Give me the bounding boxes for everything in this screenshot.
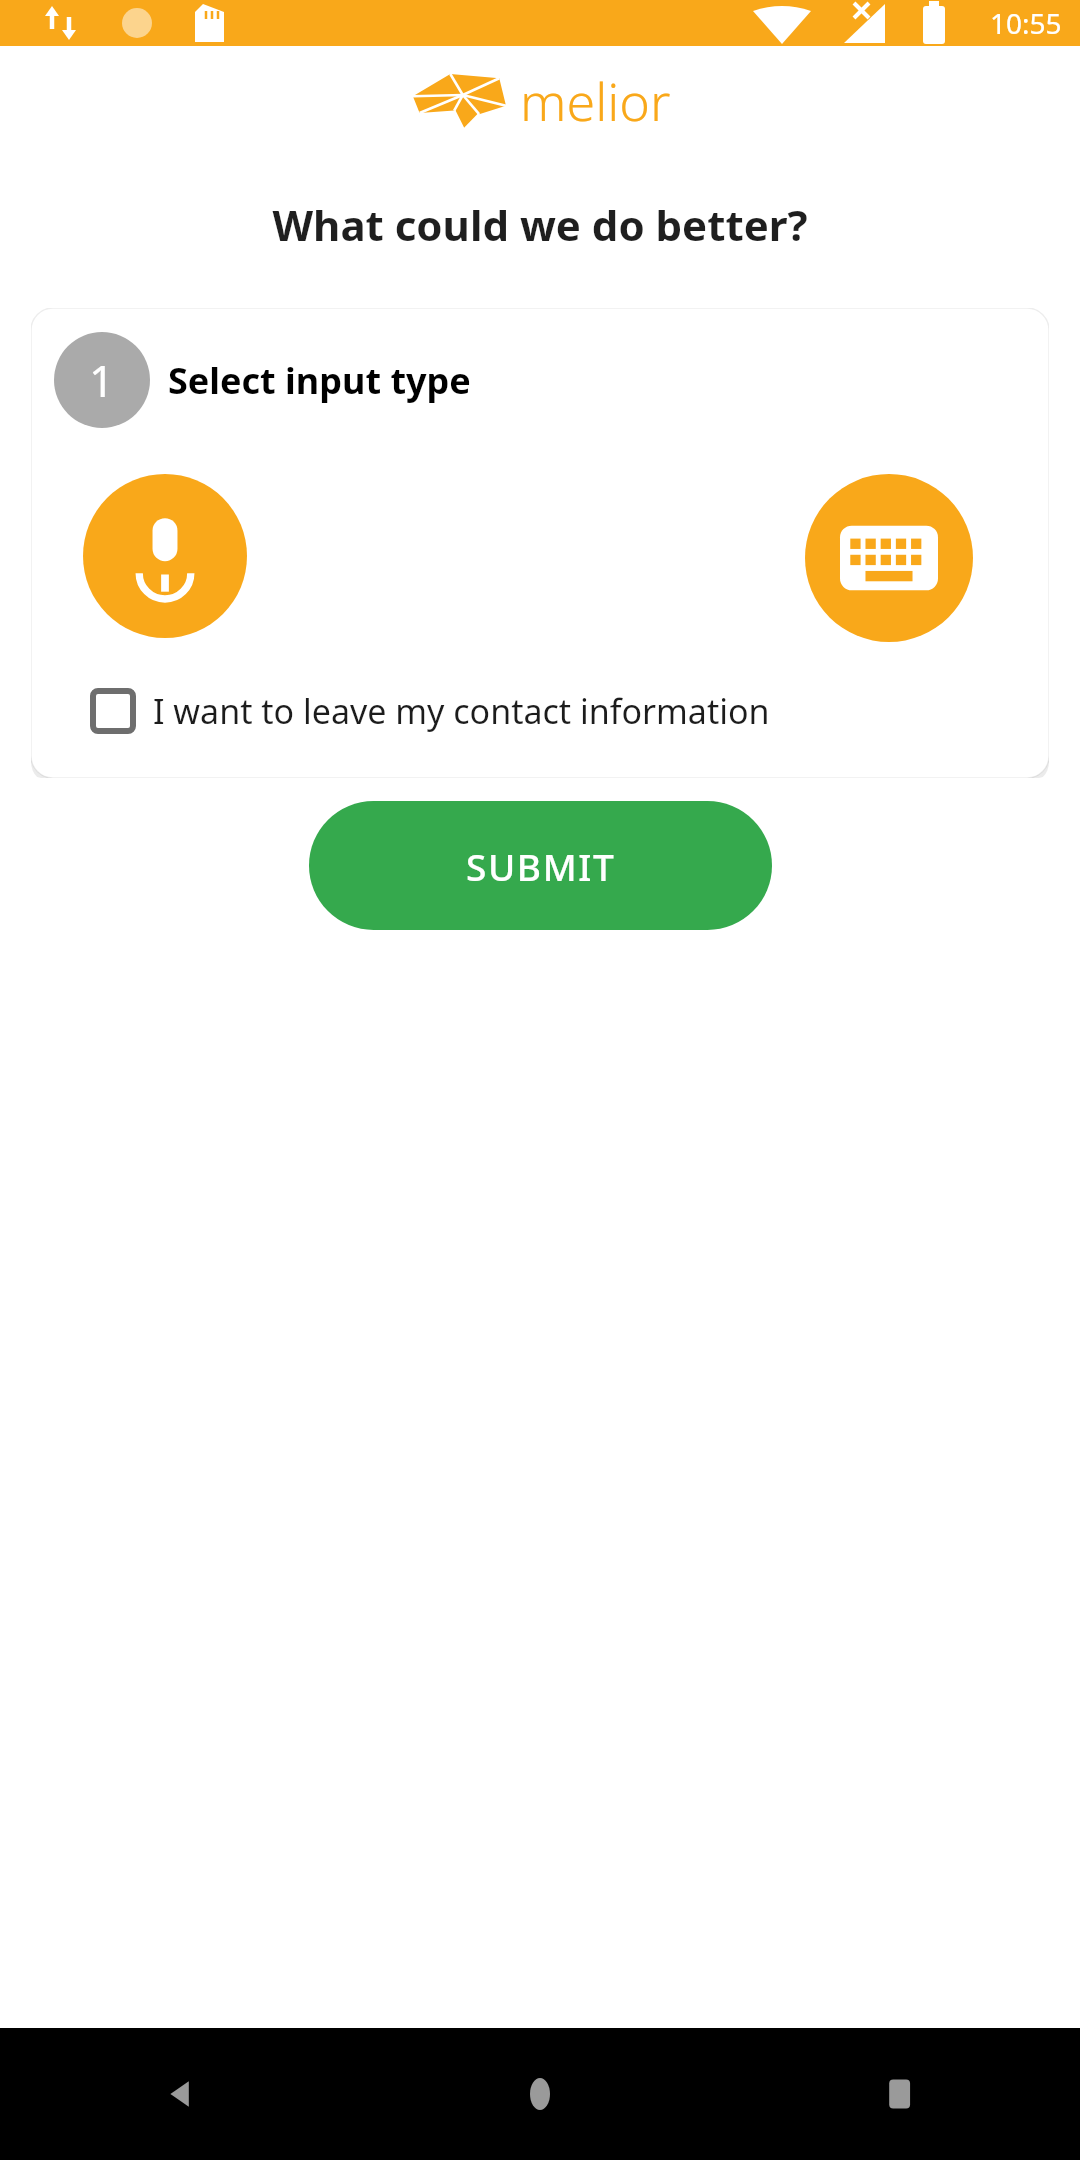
button[interactable]: Back — [0, 2028, 360, 2160]
staticText: Select input type — [168, 356, 471, 405]
button[interactable]: Record voice feedback — [83, 474, 247, 638]
staticText: What could we do better? — [0, 196, 1080, 253]
staticText: 1 — [89, 350, 115, 410]
staticText: SUBMIT — [466, 841, 616, 891]
button[interactable]: Home — [360, 2028, 720, 2160]
button[interactable]: Recent apps — [720, 2028, 1080, 2160]
staticText: I want to leave my contact information — [153, 688, 770, 734]
button[interactable]: SUBMIT — [309, 801, 772, 930]
staticText: melior — [520, 65, 671, 136]
button[interactable]: Type feedback with keyboard — [805, 474, 973, 642]
button[interactable]: I want to leave my contact information — [31, 684, 1049, 738]
staticText: 10:55 — [990, 4, 1062, 42]
